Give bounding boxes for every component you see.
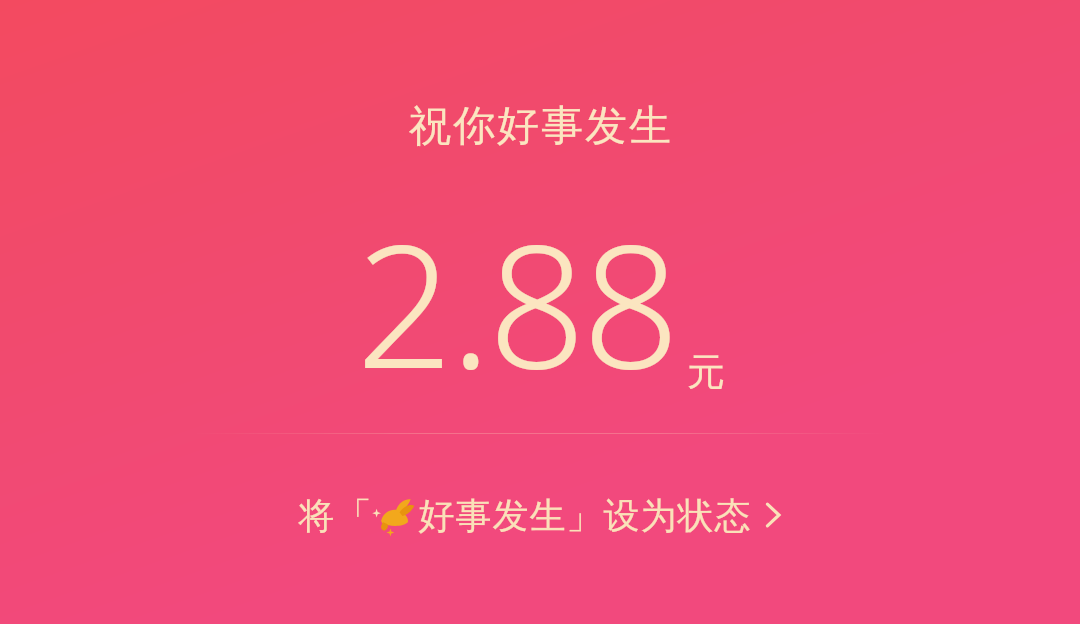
- other: 好事发生 rabbit emoji: [372, 492, 418, 538]
- button[interactable]: 将「: [282, 488, 799, 542]
- staticText: 元: [687, 348, 725, 396]
- staticText: 好事发生」设为状态: [418, 493, 751, 538]
- other: Go: [763, 498, 783, 532]
- staticText: 2.88: [356, 186, 677, 418]
- staticText: 祝你好事发生: [408, 100, 672, 153]
- staticText: 将「: [298, 493, 372, 538]
